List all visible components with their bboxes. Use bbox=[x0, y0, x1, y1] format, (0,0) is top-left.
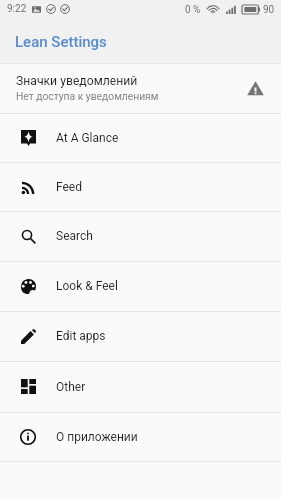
button[interactable]: Feed bbox=[0, 163, 281, 210]
button[interactable]: Значки уведомлений bbox=[0, 64, 281, 112]
staticText: 9:22 bbox=[7, 3, 27, 15]
staticText: Other bbox=[56, 380, 86, 394]
staticText: Look & Feel bbox=[56, 279, 118, 293]
other: Other bbox=[21, 379, 36, 394]
button[interactable]: Lean Settings bbox=[0, 20, 281, 63]
button[interactable]: Search bbox=[0, 212, 281, 260]
other: About bbox=[20, 429, 36, 445]
other: Warning bbox=[247, 80, 264, 97]
staticText: О приложении bbox=[56, 430, 138, 444]
staticText: Edit apps bbox=[56, 329, 106, 343]
staticText: Нет доступа к уведомлениям bbox=[16, 90, 159, 102]
other: Feed bbox=[21, 181, 35, 195]
other: Search bbox=[21, 229, 36, 244]
button[interactable]: Look and Feel bbox=[0, 262, 281, 310]
staticText: 0 % bbox=[185, 4, 201, 16]
button[interactable]: About bbox=[0, 413, 281, 460]
button[interactable]: Edit apps bbox=[0, 312, 281, 360]
other: Look and Feel bbox=[21, 279, 36, 294]
button[interactable]: Other bbox=[0, 362, 281, 411]
staticText: Lean Settings bbox=[15, 33, 107, 51]
staticText: Feed bbox=[56, 180, 83, 194]
staticText: Значки уведомлений bbox=[16, 74, 138, 88]
staticText: Search bbox=[56, 229, 93, 243]
staticText: At A Glance bbox=[56, 131, 119, 145]
other: Edit apps bbox=[21, 329, 36, 344]
staticText: 90 bbox=[263, 4, 275, 16]
button[interactable]: At A Glance bbox=[0, 114, 281, 161]
other: At A Glance bbox=[21, 130, 36, 146]
